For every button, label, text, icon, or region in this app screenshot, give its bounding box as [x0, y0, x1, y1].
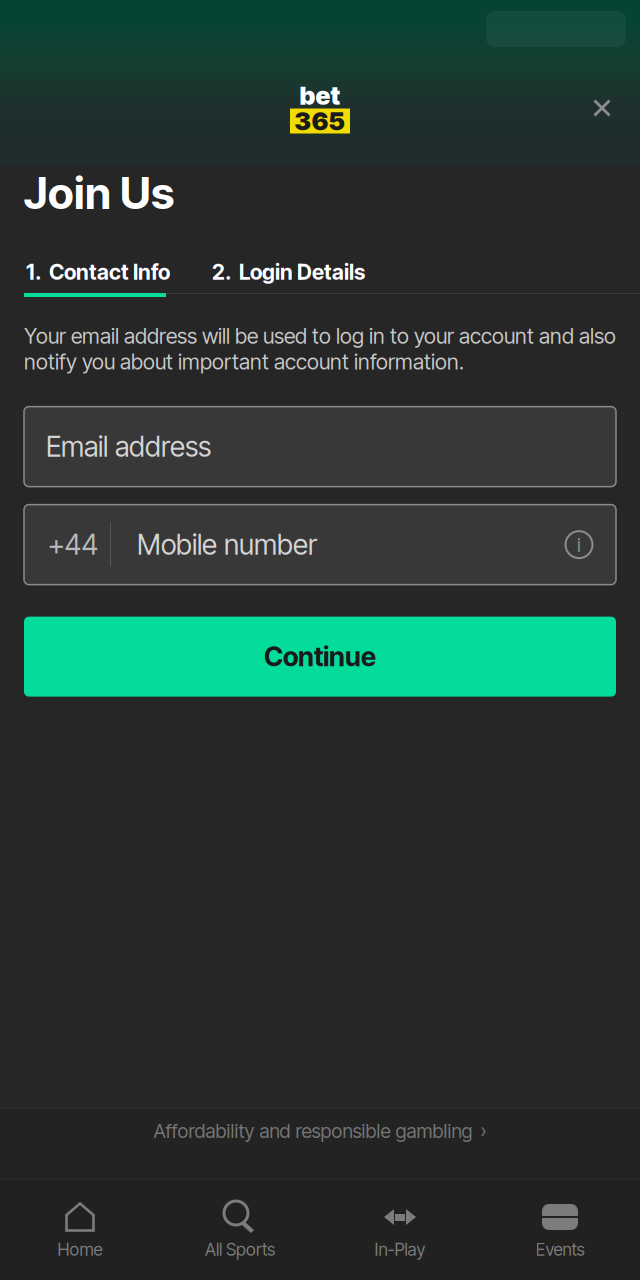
- staticText: i: [577, 532, 581, 557]
- staticText: Mobile number: [137, 528, 317, 562]
- button[interactable]: 2. Login Details: [168, 251, 365, 293]
- button[interactable]: 1. Contact Info: [0, 251, 168, 293]
- staticText: Email address: [46, 430, 211, 464]
- staticText: Home: [57, 1239, 102, 1260]
- staticText: bet: [299, 80, 340, 111]
- staticText: In-Play: [374, 1239, 425, 1260]
- button[interactable]: In-Play: [320, 1182, 480, 1278]
- button[interactable]: All Sports: [160, 1182, 320, 1278]
- staticText: +44: [47, 528, 98, 562]
- staticText: Join Us: [24, 166, 174, 220]
- staticText: All Sports: [205, 1239, 275, 1260]
- button[interactable]: Affordability and responsible gambling: [0, 1109, 640, 1153]
- button[interactable]: Events: [480, 1182, 640, 1278]
- staticText: ›: [480, 1119, 486, 1143]
- button[interactable]: +44: [24, 505, 616, 585]
- button[interactable]: Email address: [24, 407, 616, 487]
- staticText: Affordability and responsible gambling: [153, 1119, 472, 1143]
- staticText: 2. Login Details: [212, 259, 365, 285]
- button[interactable]: Continue: [24, 617, 616, 697]
- staticText: 1. Contact Info: [26, 259, 170, 285]
- staticText: Continue: [264, 640, 376, 673]
- button[interactable]: Home: [0, 1182, 160, 1278]
- staticText: Events: [535, 1239, 584, 1260]
- staticText: Your email address will be used to log i…: [24, 323, 616, 375]
- staticText: 365: [294, 106, 345, 136]
- button[interactable]: Close: [576, 82, 628, 134]
